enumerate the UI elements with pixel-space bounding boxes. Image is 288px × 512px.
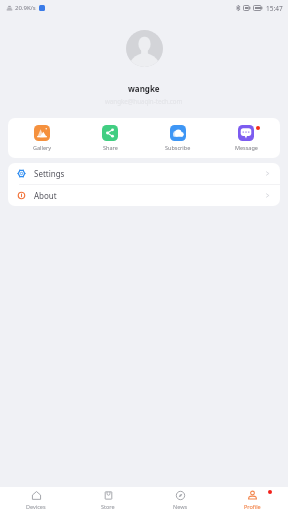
button[interactable]: Settings <box>8 163 280 184</box>
staticText: Gallery <box>33 144 52 151</box>
button[interactable]: Subscribe <box>144 118 212 158</box>
button[interactable]: About <box>8 185 280 206</box>
staticText: News <box>173 503 188 510</box>
button[interactable]: Devices <box>0 487 72 512</box>
staticText: Devices <box>26 503 46 510</box>
button[interactable]: Message <box>212 118 280 158</box>
staticText: Settings <box>34 168 65 179</box>
button[interactable]: Profile <box>216 487 288 512</box>
staticText: Profile <box>244 503 261 510</box>
staticText: 20.9K/s <box>15 4 36 12</box>
staticText: About <box>34 190 57 201</box>
staticText: wangke@huaqin-tech.com <box>105 97 183 105</box>
staticText: Message <box>235 144 258 151</box>
staticText: wangke <box>128 83 160 94</box>
button[interactable]: Share <box>76 118 144 158</box>
staticText: Subscribe <box>165 144 191 151</box>
button[interactable]: Gallery <box>8 118 76 158</box>
staticText: Store <box>101 503 115 510</box>
staticText: Share <box>103 144 118 151</box>
staticText: 15:47 <box>266 4 283 13</box>
button[interactable]: Store <box>72 487 144 512</box>
button[interactable]: News <box>144 487 216 512</box>
